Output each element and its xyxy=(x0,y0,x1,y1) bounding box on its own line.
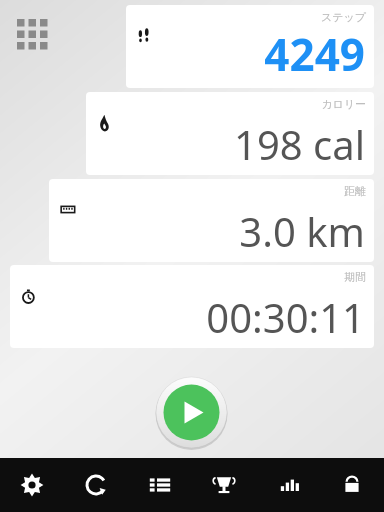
staticText: ステップ xyxy=(320,10,366,24)
staticText: 198 cal xyxy=(234,117,365,171)
button[interactable]: Settings xyxy=(0,458,64,512)
staticText: 3.0 km xyxy=(239,204,365,258)
button[interactable]: Stats xyxy=(256,458,320,512)
button[interactable]: Start xyxy=(155,376,228,449)
staticText: 00:30:11 xyxy=(206,290,365,344)
staticText: 4249 xyxy=(264,24,365,84)
button[interactable]: 期間 xyxy=(10,265,374,348)
button[interactable]: カロリー xyxy=(86,92,374,175)
button[interactable]: List xyxy=(128,458,192,512)
button[interactable]: 距離 xyxy=(49,179,374,262)
button[interactable]: Sync xyxy=(64,458,128,512)
staticText: 期間 xyxy=(344,270,366,284)
button[interactable]: Menu xyxy=(10,13,54,57)
staticText: 距離 xyxy=(344,184,366,198)
button[interactable]: Achievements xyxy=(192,458,256,512)
button[interactable]: ステップ xyxy=(126,5,374,88)
button[interactable]: Lock xyxy=(320,458,384,512)
staticText: カロリー xyxy=(321,97,366,111)
